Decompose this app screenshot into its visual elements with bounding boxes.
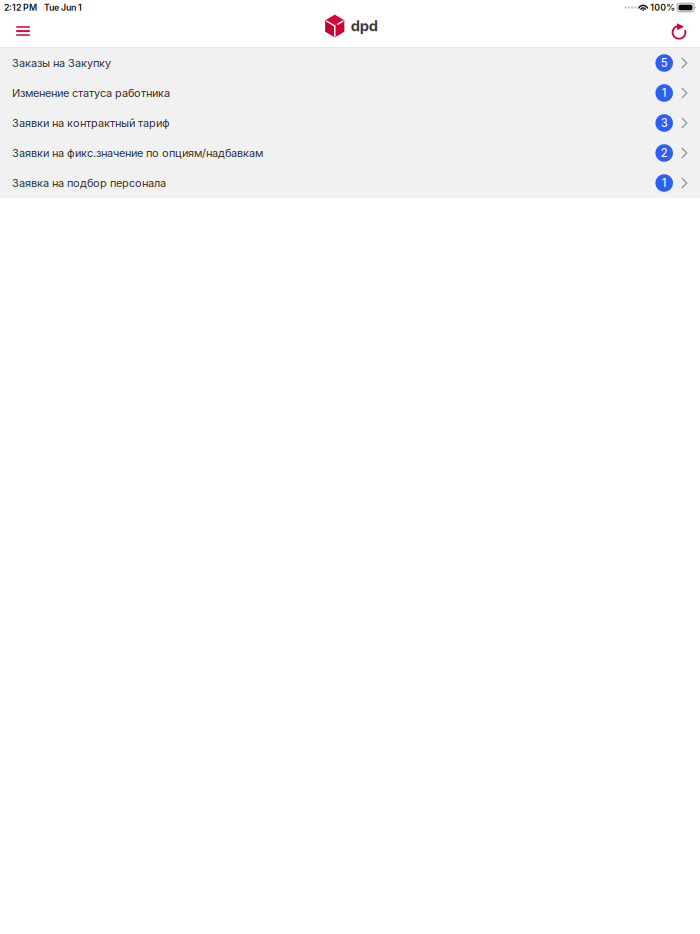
button[interactable]: Заявки на контрактный тариф xyxy=(0,108,700,138)
button[interactable]: Заявка на подбор персонала xyxy=(0,168,700,198)
button[interactable]: Menu xyxy=(7,14,39,47)
staticText: Изменение статуса работника xyxy=(12,86,170,100)
button[interactable]: Заявки на фикс.значение по опциям/надбав… xyxy=(0,138,700,168)
staticText: Заказы на Закупку xyxy=(12,56,111,70)
staticText: 3 xyxy=(661,116,668,130)
staticText: 1 xyxy=(662,86,667,100)
staticText: Заявки на контрактный тариф xyxy=(12,116,170,130)
staticText: dpd xyxy=(351,17,378,35)
staticText: 100% xyxy=(650,2,675,13)
staticText: Tue Jun 1 xyxy=(44,2,82,13)
staticText: 2:12 PM xyxy=(4,2,37,13)
staticText: Заявка на подбор персонала xyxy=(12,176,166,190)
staticText: 5 xyxy=(661,56,668,70)
button[interactable]: Заказы на Закупку xyxy=(0,48,700,78)
button[interactable]: Refresh xyxy=(663,14,695,47)
staticText: 2 xyxy=(661,146,668,160)
staticText: Заявки на фикс.значение по опциям/надбав… xyxy=(12,146,263,160)
staticText: 1 xyxy=(662,176,667,190)
button[interactable]: Изменение статуса работника xyxy=(0,78,700,108)
